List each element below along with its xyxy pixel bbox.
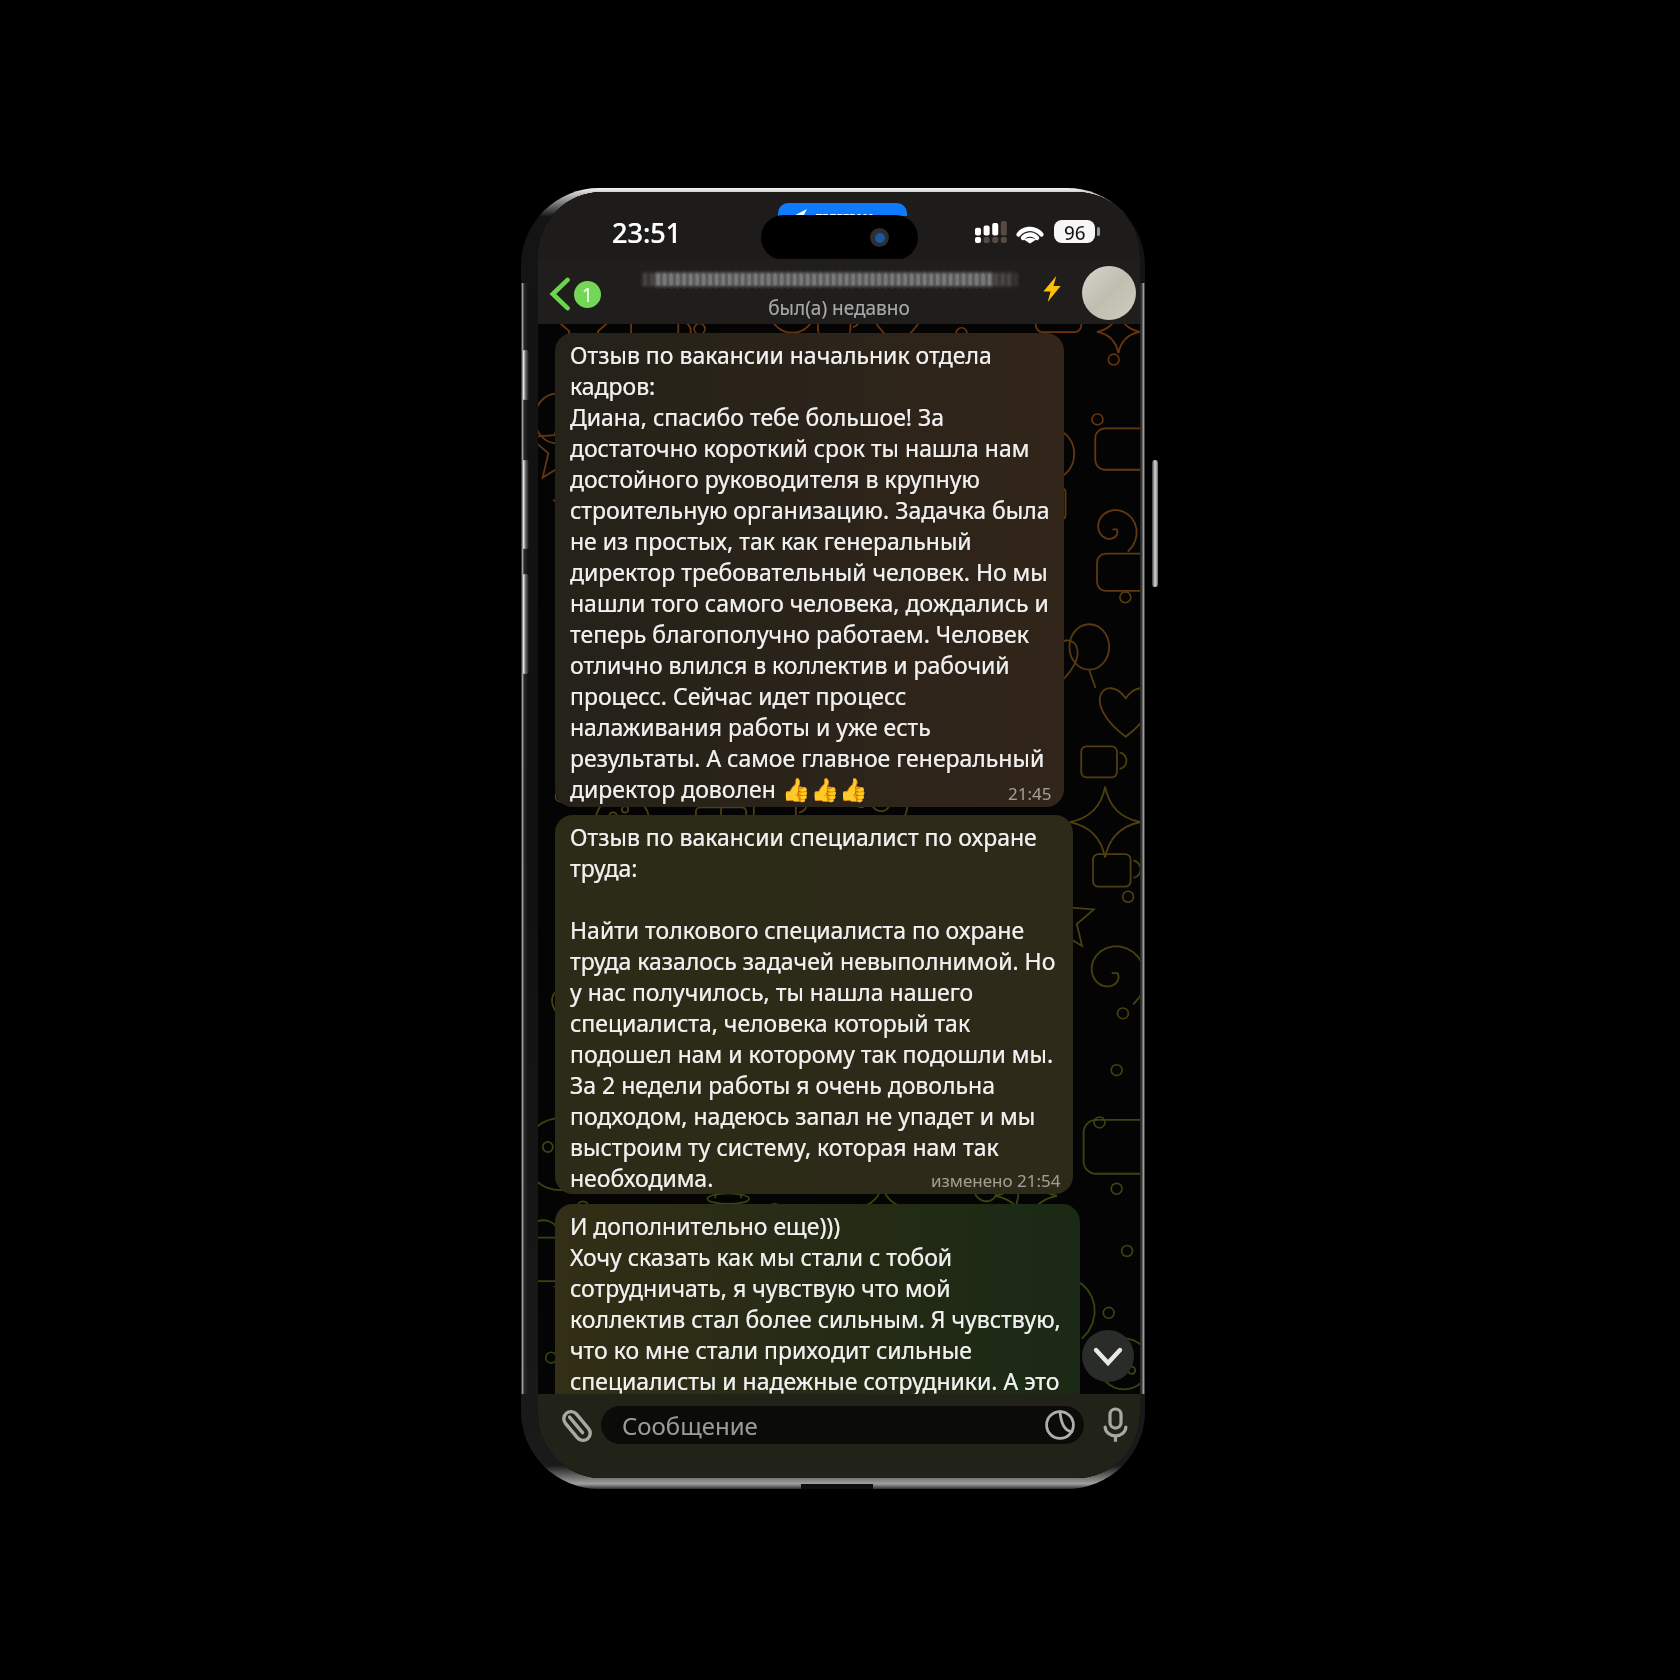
staticText: 96: [1064, 220, 1086, 243]
staticText: изменено 21:54: [931, 1169, 1061, 1192]
button[interactable]: Boost channel: [1036, 273, 1068, 305]
staticText: Отзыв по вакансии начальник отдела кадро…: [570, 339, 1053, 805]
button[interactable]: Stickers: [1044, 1409, 1076, 1441]
staticText: 21:45: [1008, 782, 1052, 805]
button[interactable]: Сообщение: [601, 1406, 1084, 1444]
staticText: Сообщение: [622, 1409, 758, 1442]
staticText: ТЕЛЕГРАМ: [816, 210, 874, 216]
button[interactable]: Scroll to bottom: [1082, 1330, 1134, 1382]
staticText: И дополнительно еще))) Хочу сказать как …: [570, 1210, 1069, 1396]
staticText: Отзыв по вакансии специалист по охране т…: [570, 821, 1062, 1193]
staticText: 23:51: [612, 214, 682, 251]
button[interactable]: Profile photo: [1082, 266, 1136, 320]
button[interactable]: И дополнительно еще))) Хочу сказать как …: [555, 1204, 1080, 1444]
button[interactable]: Отзыв по вакансии начальник отдела кадро…: [555, 333, 1064, 807]
button[interactable]: Attach file: [554, 1403, 600, 1449]
button[interactable]: Отзыв по вакансии специалист по охране т…: [555, 815, 1073, 1194]
staticText: 1: [582, 282, 593, 308]
staticText: был(а) недавно: [538, 295, 1140, 321]
button[interactable]: Voice message: [1094, 1404, 1136, 1446]
button[interactable]: Back: [547, 274, 605, 314]
